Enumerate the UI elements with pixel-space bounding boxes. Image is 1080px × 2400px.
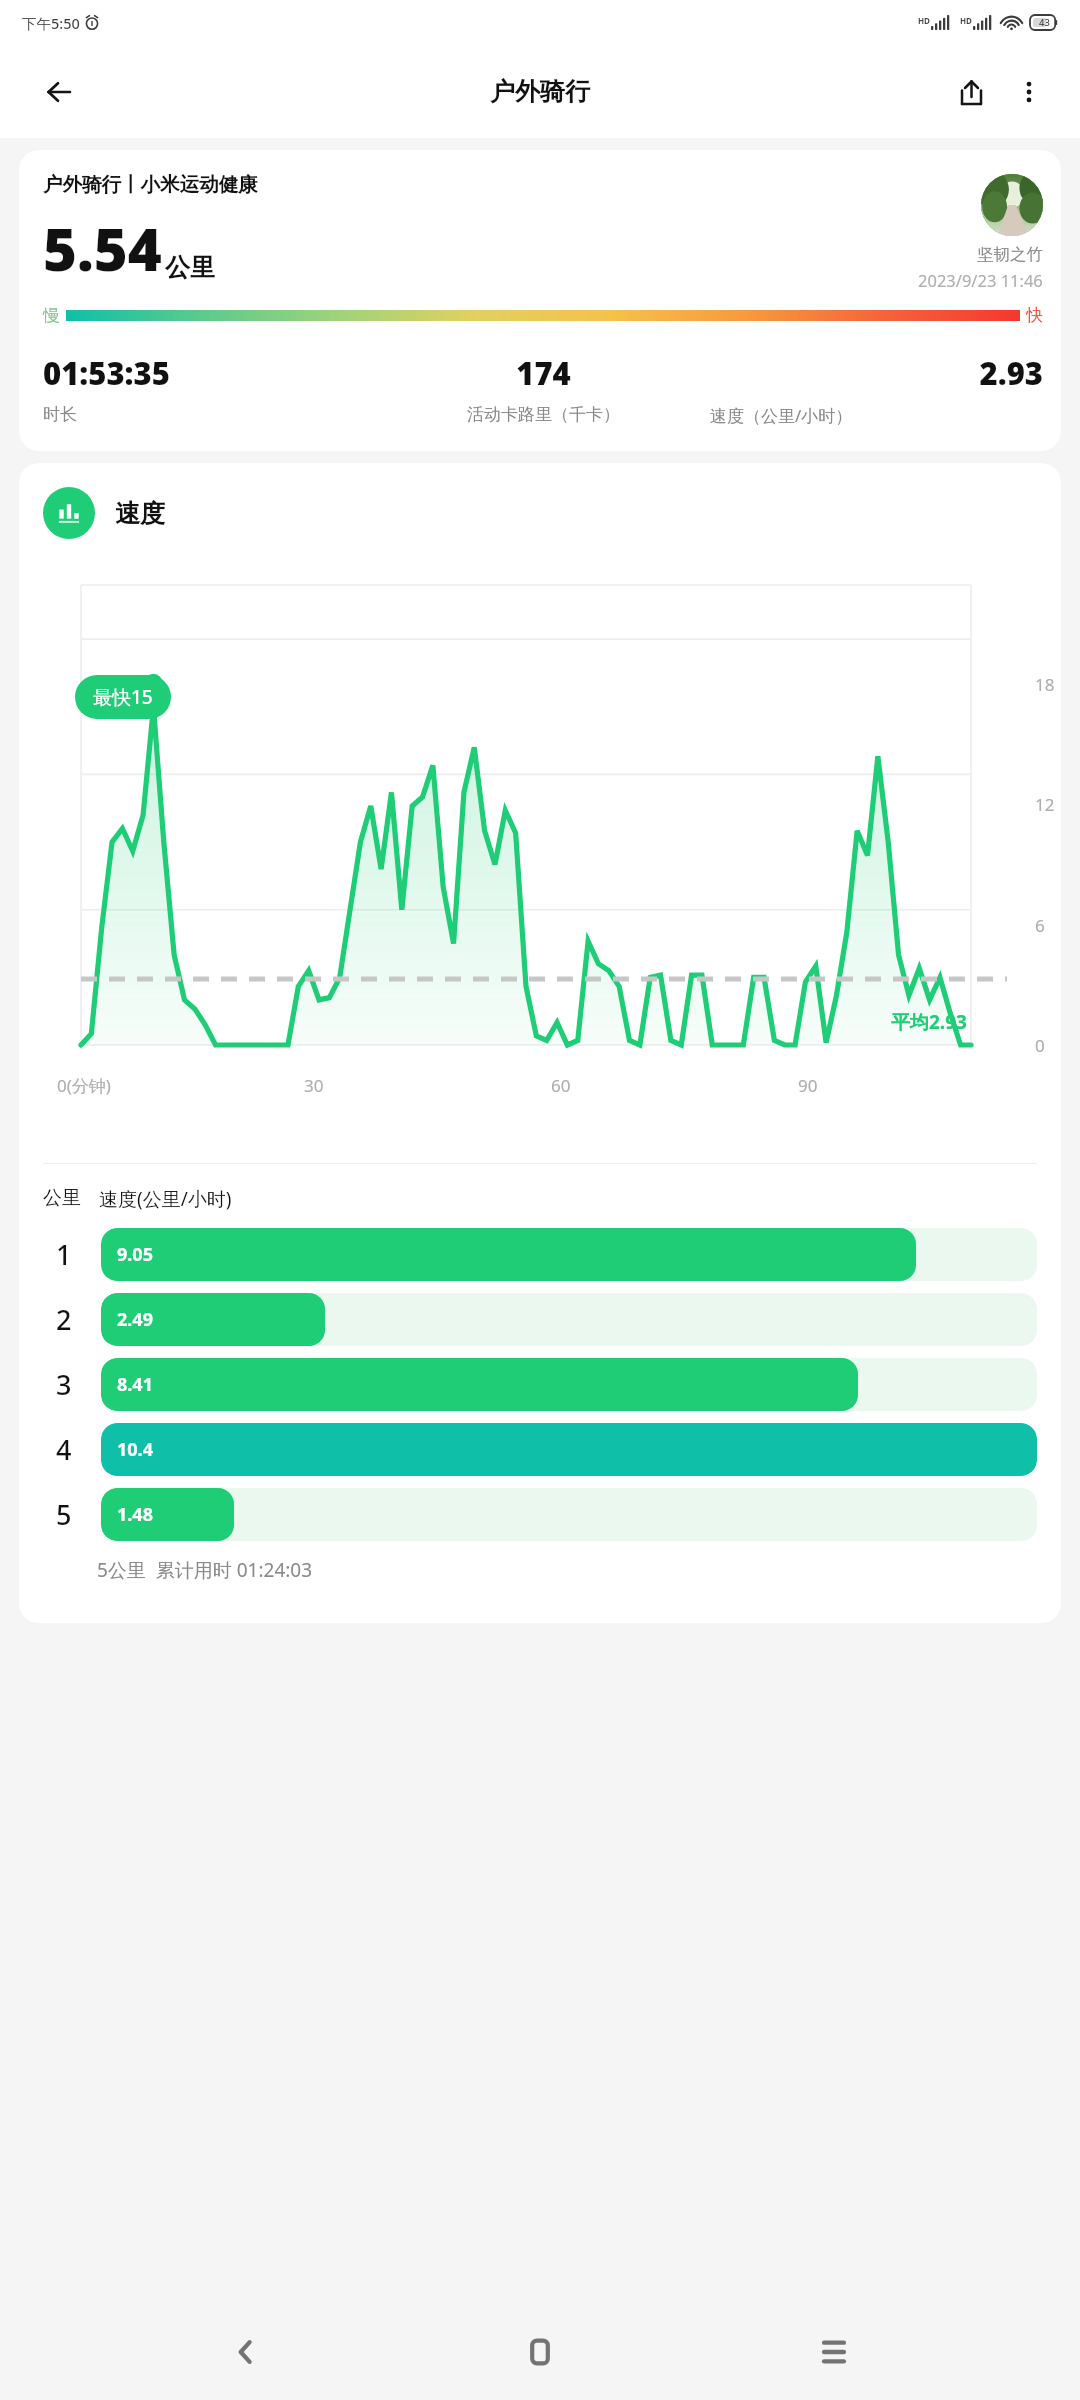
staticText: 6 [1035,914,1045,937]
staticText: 下午5:50 [22,13,80,33]
button[interactable]: Back [30,63,88,121]
button[interactable]: More options [1000,63,1058,121]
button[interactable]: 2 [43,1293,1037,1346]
staticText: 174 [377,352,710,394]
staticText: 0(分钟) [57,1074,304,1097]
staticText: 5.54 [43,209,162,288]
button[interactable]: Home [492,2304,588,2400]
staticText: 90 [798,1074,971,1097]
staticText: 3 [56,1366,72,1403]
staticText: 5 [56,1496,72,1533]
button[interactable]: 户外骑行丨小米运动健康 [19,150,1061,451]
staticText: 30 [304,1074,551,1097]
staticText: 活动卡路里（千卡） [377,404,710,425]
staticText: 4 [56,1431,72,1468]
staticText: 43 [1039,16,1050,29]
staticText: 户外骑行丨小米运动健康 [43,172,258,197]
staticText: 速度 [115,498,165,529]
staticText: 公里 [43,1186,81,1210]
staticText: 2.93 [710,352,1043,394]
staticText: 01:53:35 [43,352,377,394]
staticText: 时长 [43,404,377,425]
staticText: 平均2.93 [891,1009,967,1035]
staticText: 9.05 [117,1242,153,1267]
staticText: 1.48 [117,1502,153,1527]
button[interactable]: 速度 [43,487,1037,539]
staticText: 速度(公里/小时) [99,1186,232,1212]
button[interactable]: 3 [43,1358,1037,1411]
staticText: 慢 [43,305,60,326]
staticText: 12 [1035,793,1055,816]
button[interactable]: 4 [43,1423,1037,1476]
staticText: 5公里 累计用时 01:24:03 [97,1557,313,1583]
button[interactable]: Share [942,63,1000,121]
staticText: 10.4 [117,1437,153,1462]
staticText: 速度（公里/小时） [710,404,1043,427]
button[interactable]: 5 [43,1488,1037,1541]
staticText: HD [918,15,930,26]
staticText: 2023/9/23 11:46 [918,269,1043,291]
staticText: 2.49 [117,1307,153,1332]
staticText: 坚韧之竹 [977,244,1043,265]
button[interactable]: Recent apps [786,2304,882,2400]
button[interactable]: Back [198,2304,294,2400]
staticText: 最快15 [93,684,153,710]
staticText: 2 [56,1301,72,1338]
staticText: 0 [1035,1034,1045,1057]
staticText: 60 [551,1074,798,1097]
button[interactable]: 1 [43,1228,1037,1281]
staticText: 18 [1035,673,1055,696]
staticText: 8.41 [117,1372,153,1397]
staticText: 户外骑行 [490,76,590,107]
staticText: 1 [56,1236,72,1273]
staticText: 公里 [165,252,215,283]
staticText: HD [960,15,972,26]
staticText: 快 [1026,305,1043,326]
